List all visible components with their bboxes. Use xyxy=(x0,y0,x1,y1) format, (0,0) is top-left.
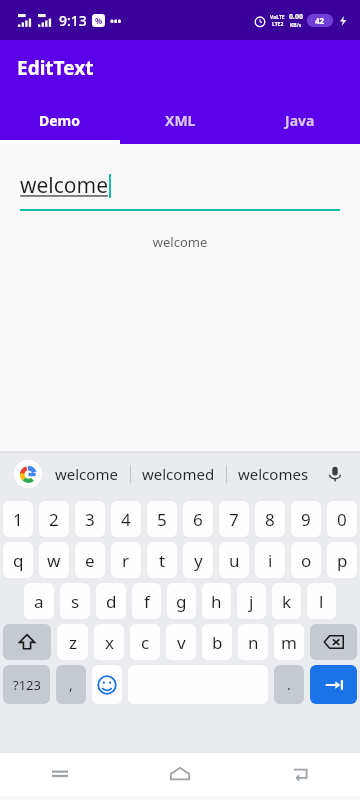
button[interactable]: Google xyxy=(14,460,42,488)
button[interactable]: Shift xyxy=(3,624,51,660)
staticText: u xyxy=(229,549,240,572)
staticText: 9 xyxy=(301,508,311,531)
button[interactable]: welcome xyxy=(20,171,340,200)
staticText: 5 xyxy=(157,508,167,531)
staticText: 6 xyxy=(193,508,203,531)
staticText: 9:13 xyxy=(59,11,87,30)
button[interactable]: Demo xyxy=(0,96,120,144)
button[interactable]: w xyxy=(39,542,69,578)
button[interactable]: welcome xyxy=(42,453,130,495)
staticText: q xyxy=(13,549,24,572)
button[interactable]: r xyxy=(111,542,141,578)
button[interactable]: k xyxy=(272,583,301,619)
staticText: i xyxy=(268,549,273,572)
staticText: ••• xyxy=(110,14,122,28)
staticText: welcomes xyxy=(238,464,309,484)
button[interactable]: 9 xyxy=(291,501,321,537)
button[interactable]: j xyxy=(237,583,266,619)
button[interactable]: s xyxy=(60,583,90,619)
staticText: p xyxy=(337,549,348,572)
button[interactable]: y xyxy=(183,542,213,578)
staticText: y xyxy=(194,549,203,572)
staticText: m xyxy=(281,631,297,654)
button[interactable]: 0 xyxy=(327,501,357,537)
button[interactable]: Next xyxy=(310,665,357,704)
button[interactable]: . xyxy=(274,665,304,704)
button[interactable]: h xyxy=(202,583,231,619)
button[interactable]: b xyxy=(202,624,232,660)
button[interactable]: 2 xyxy=(39,501,69,537)
staticText: b xyxy=(212,631,223,654)
button[interactable]: t xyxy=(147,542,177,578)
staticText: KB/s xyxy=(290,22,302,29)
staticText: d xyxy=(106,590,117,613)
staticText: welcomed xyxy=(142,464,215,484)
button[interactable]: e xyxy=(75,542,105,578)
button[interactable]: 3 xyxy=(75,501,105,537)
button[interactable]: ?123 xyxy=(3,665,50,704)
staticText: v xyxy=(177,631,186,654)
button[interactable]: 1 xyxy=(3,501,33,537)
button[interactable]: x xyxy=(94,624,124,660)
staticText: LTE2 xyxy=(272,21,284,28)
staticText: % xyxy=(95,15,103,26)
staticText: welcome xyxy=(0,233,360,251)
staticText: welcome xyxy=(55,464,118,484)
staticText: g xyxy=(176,590,187,613)
button[interactable]: g xyxy=(167,583,196,619)
staticText: XML xyxy=(165,111,196,130)
button[interactable]: o xyxy=(291,542,321,578)
button[interactable]: a xyxy=(24,583,54,619)
button[interactable]: XML xyxy=(120,96,240,144)
button[interactable]: , xyxy=(56,665,86,704)
button[interactable]: v xyxy=(166,624,196,660)
button[interactable]: c xyxy=(130,624,160,660)
button[interactable]: welcomes xyxy=(227,453,320,495)
staticText: r xyxy=(122,549,130,572)
button[interactable]: Back xyxy=(240,752,360,796)
button[interactable]: Emoji xyxy=(92,665,122,704)
staticText: l xyxy=(319,590,324,613)
staticText: 42 xyxy=(315,15,325,26)
staticText: Java xyxy=(285,111,315,130)
staticText: o xyxy=(301,549,312,572)
staticText: welcome xyxy=(20,171,109,200)
button[interactable]: i xyxy=(255,542,285,578)
staticText: z xyxy=(69,631,77,654)
staticText: j xyxy=(249,590,254,613)
button[interactable]: l xyxy=(307,583,336,619)
button[interactable]: Backspace xyxy=(310,624,357,660)
staticText: k xyxy=(282,590,292,613)
button[interactable]: n xyxy=(238,624,268,660)
button[interactable]: 4 xyxy=(111,501,141,537)
button[interactable]: u xyxy=(219,542,249,578)
staticText: 8 xyxy=(265,508,275,531)
button[interactable]: 6 xyxy=(183,501,213,537)
button[interactable]: q xyxy=(3,542,33,578)
button[interactable]: p xyxy=(327,542,357,578)
staticText: , xyxy=(69,675,73,694)
button[interactable]: 8 xyxy=(255,501,285,537)
staticText: 7 xyxy=(229,508,239,531)
staticText: 3 xyxy=(85,508,95,531)
button[interactable]: 5 xyxy=(147,501,177,537)
staticText: ?123 xyxy=(13,676,41,694)
staticText: VoLTE xyxy=(270,14,285,21)
button[interactable]: Recents xyxy=(0,752,120,796)
button[interactable]: d xyxy=(96,583,126,619)
button[interactable]: Home xyxy=(120,752,240,796)
staticText: 0 xyxy=(337,508,347,531)
button[interactable]: 7 xyxy=(219,501,249,537)
button[interactable]: welcomed xyxy=(131,453,226,495)
staticText: 4 xyxy=(121,508,131,531)
button[interactable]: Voice input xyxy=(320,459,350,489)
button[interactable]: Java xyxy=(240,96,360,144)
staticText: 1 xyxy=(13,508,23,531)
staticText: s xyxy=(71,590,80,613)
button[interactable]: f xyxy=(132,583,161,619)
button[interactable]: z xyxy=(57,624,88,660)
button[interactable]: m xyxy=(274,624,304,660)
staticText: f xyxy=(144,590,150,613)
staticText: x xyxy=(105,631,114,654)
